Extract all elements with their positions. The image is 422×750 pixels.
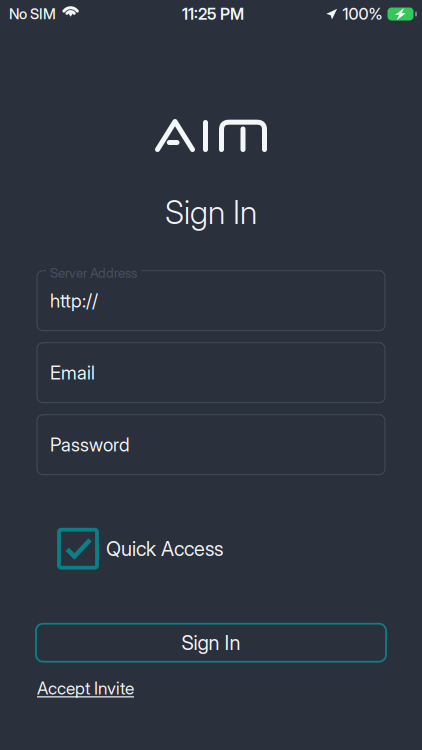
staticText: 100% [342,4,382,24]
button[interactable]: Quick Access [0,529,422,569]
staticText: Quick Access [106,537,223,561]
staticText: Email [50,361,95,384]
staticText: 11:25 PM [182,4,244,24]
staticText: http:// [50,289,98,312]
staticText: No SIM [9,5,56,23]
staticText: Accept Invite [37,678,134,699]
button[interactable]: Accept Invite [0,678,422,699]
button[interactable]: Sign In [36,624,386,662]
staticText: Sign In [165,193,257,232]
staticText: Server Address [50,265,137,281]
staticText: Sign In [181,631,240,655]
staticText: Password [50,433,130,456]
